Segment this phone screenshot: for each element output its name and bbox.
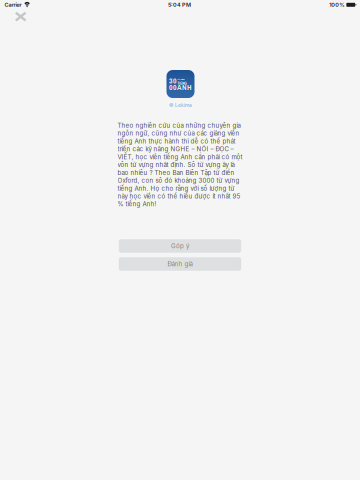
staticText: Carrier — [5, 1, 22, 8]
staticText: 30 — [169, 76, 177, 86]
staticText: 5:04 PM — [168, 1, 191, 8]
staticText: 100% — [329, 1, 344, 8]
staticText: Đánh giá — [167, 260, 192, 268]
staticText: Theo nghiên cứu của những chuyên gia ngô… — [117, 121, 242, 208]
staticText: TỪ VỰNG — [177, 78, 184, 81]
staticText: TIẾNG — [177, 81, 187, 86]
staticText: 00ANH — [169, 82, 192, 92]
button[interactable]: Close — [11, 8, 30, 25]
button[interactable]: Đánh giá — [119, 257, 241, 271]
staticText: © Lekima — [169, 102, 192, 108]
staticText: Góp ý — [171, 242, 189, 250]
button[interactable]: Góp ý — [119, 239, 241, 253]
